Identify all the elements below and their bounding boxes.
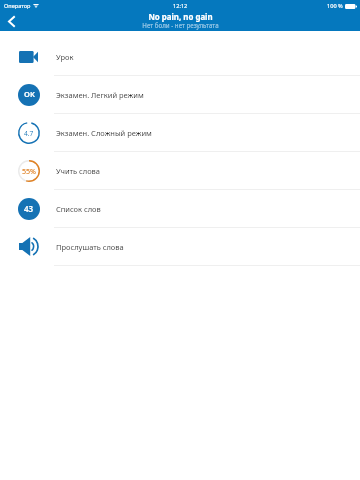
staticText: 4.7 — [24, 129, 34, 138]
staticText: Учить слова — [56, 166, 101, 176]
button[interactable]: Прослушать слова — [0, 228, 360, 266]
button[interactable]: 55% — [0, 152, 360, 190]
staticText: Нет боли - нет результата — [142, 21, 219, 29]
staticText: 55% — [22, 166, 37, 176]
button[interactable]: OK — [0, 76, 360, 114]
staticText: 12:12 — [173, 2, 188, 10]
staticText: Список слов — [56, 204, 101, 214]
staticText: 100 % — [327, 2, 343, 10]
staticText: OK — [24, 89, 35, 99]
staticText: Прослушать слова — [56, 242, 124, 252]
staticText: 43 — [24, 203, 34, 214]
button[interactable]: 43 — [0, 190, 360, 228]
staticText: No pain, no gain — [148, 12, 213, 23]
button[interactable]: 4.7 — [0, 114, 360, 152]
button[interactable]: Урок — [0, 38, 360, 76]
staticText: Экзамен. Легкий режим — [56, 90, 144, 100]
staticText: Оператор — [4, 2, 31, 10]
staticText: Экзамен. Сложный режим — [56, 128, 152, 138]
staticText: Урок — [56, 52, 74, 62]
button[interactable]: Back — [0, 11, 22, 31]
